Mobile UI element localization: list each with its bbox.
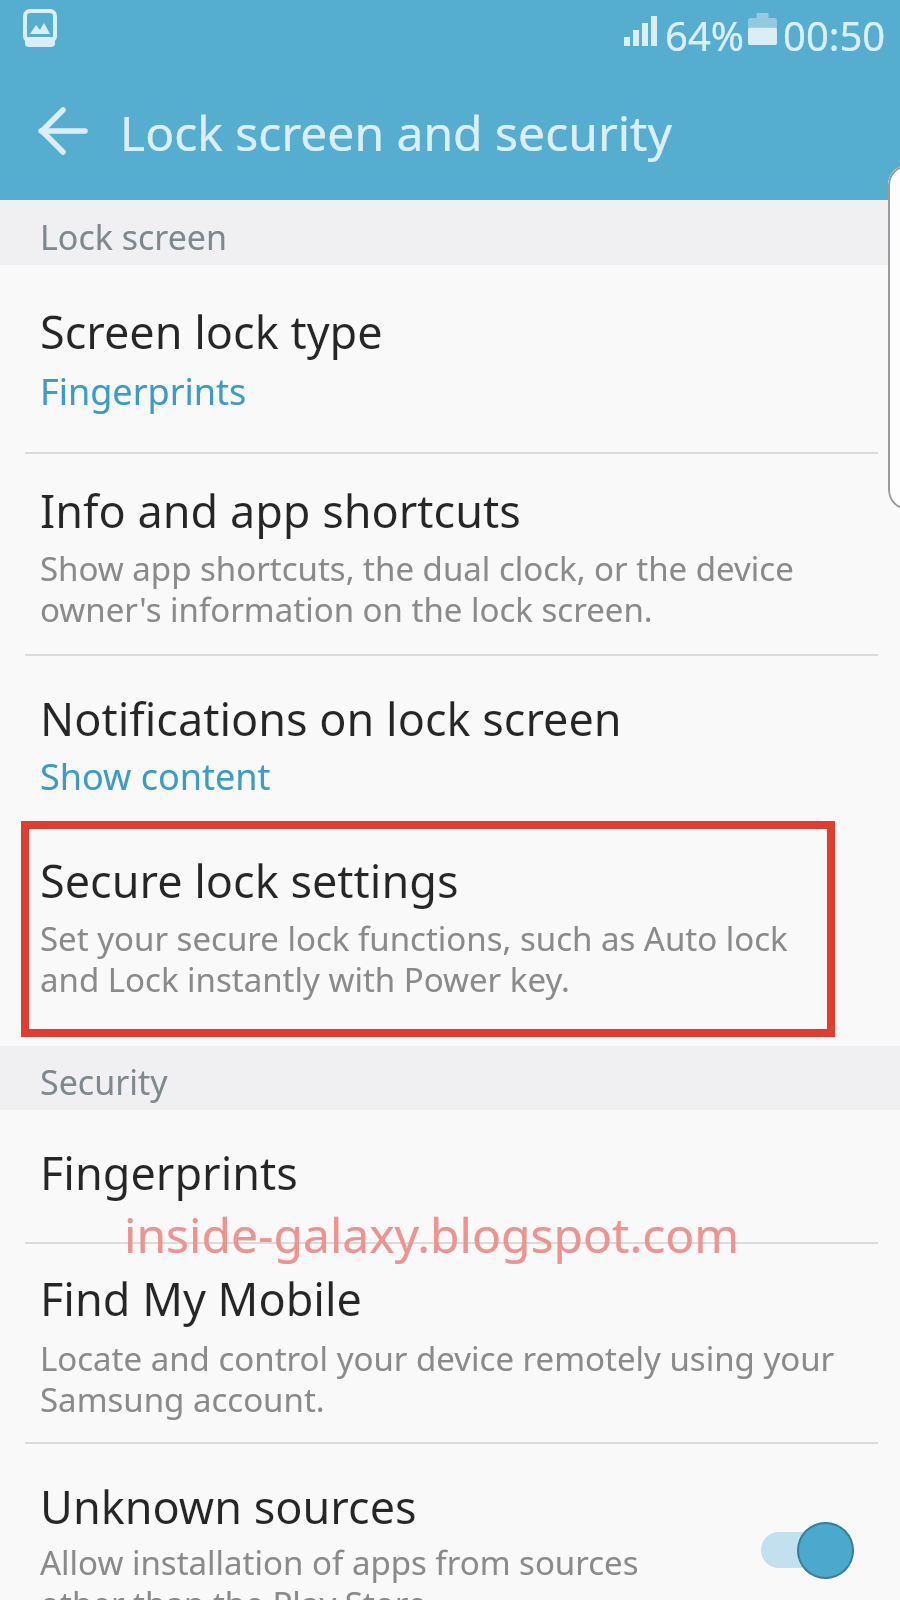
staticText: Screen lock type xyxy=(40,301,383,362)
staticText: inside-galaxy.blogspot.com xyxy=(124,1202,740,1267)
button[interactable]: Unknown sources xyxy=(0,1444,900,1600)
button[interactable] xyxy=(761,1532,853,1568)
staticText: Fingerprints xyxy=(40,367,247,416)
staticText: Notifications on lock screen xyxy=(40,688,622,749)
button[interactable]: Info and app shortcuts xyxy=(0,454,900,654)
staticText: Info and app shortcuts xyxy=(40,480,521,541)
button[interactable]: Secure lock settings xyxy=(0,822,900,1046)
staticText: Show app shortcuts, the dual clock, or t… xyxy=(40,546,794,632)
staticText: Lock screen xyxy=(40,214,228,260)
button[interactable]: Screen lock type xyxy=(0,265,900,453)
staticText: Show content xyxy=(40,752,271,801)
staticText: Secure lock settings xyxy=(40,850,459,911)
staticText: Find My Mobile xyxy=(40,1268,362,1329)
button[interactable]: Find My Mobile xyxy=(0,1244,900,1443)
staticText: Locate and control your device remotely … xyxy=(40,1336,835,1422)
staticText: Fingerprints xyxy=(40,1142,298,1203)
staticText: 00:50 xyxy=(783,8,886,62)
staticText: Security xyxy=(40,1059,168,1105)
button[interactable]: Fingerprints xyxy=(0,1110,900,1243)
button[interactable] xyxy=(20,90,110,174)
staticText: Allow installation of apps from sources … xyxy=(40,1540,639,1600)
staticText: Lock screen and security xyxy=(120,100,672,165)
staticText: Unknown sources xyxy=(40,1476,417,1537)
button[interactable]: Notifications on lock screen xyxy=(0,656,900,822)
staticText: 64% xyxy=(665,8,744,62)
staticText: Set your secure lock functions, such as … xyxy=(40,916,788,1002)
